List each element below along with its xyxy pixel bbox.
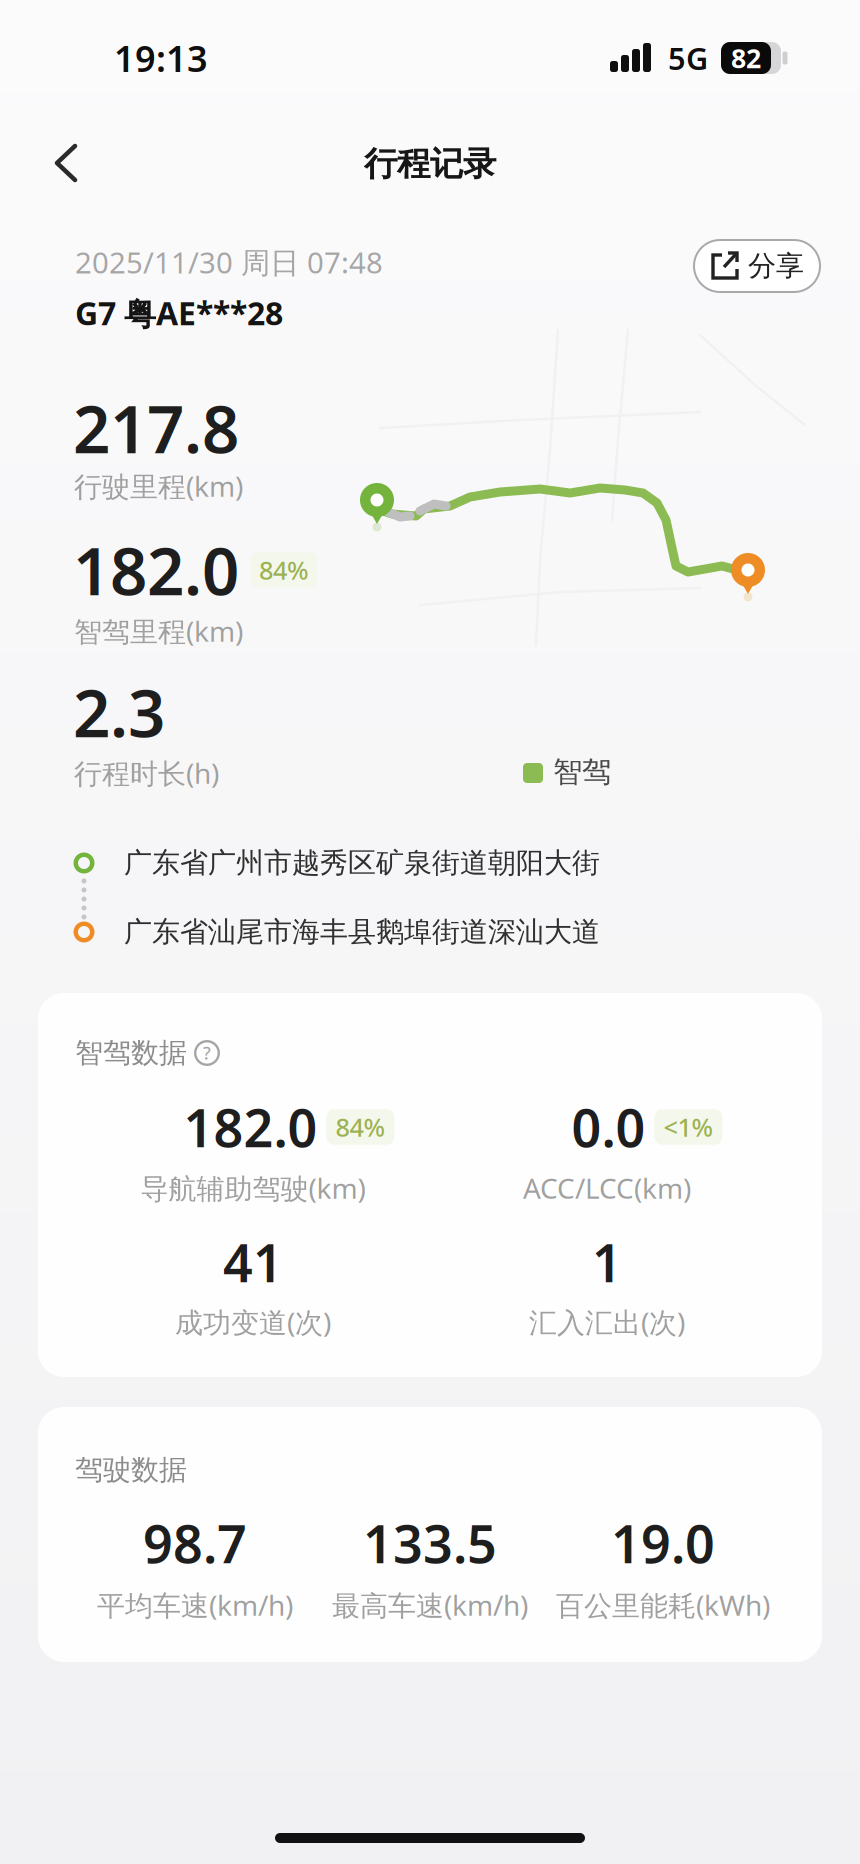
staticText: 最高车速(km/h) — [332, 1586, 528, 1624]
staticText: 导航辅助驾驶(km) — [140, 1169, 365, 1207]
staticText: 智驾数据 — [75, 1036, 187, 1070]
staticText: 182.0 — [183, 1092, 317, 1162]
staticText: 182.0 — [73, 527, 239, 613]
staticText: 5G — [668, 38, 708, 78]
staticText: ACC/LCC(km) — [523, 1169, 691, 1207]
staticText: 分享 — [748, 249, 804, 283]
staticText: 19.0 — [611, 1508, 715, 1578]
staticText: <1% — [663, 1110, 713, 1144]
staticText: 行程时长(h) — [74, 754, 219, 792]
staticText: 成功变道(次) — [175, 1303, 331, 1341]
staticText: 智驾 — [553, 754, 611, 790]
staticText: 0.0 — [571, 1092, 645, 1162]
staticText: 1 — [592, 1227, 622, 1297]
staticText: 84% — [335, 1110, 385, 1144]
button[interactable]: 返回 — [40, 130, 92, 196]
button[interactable]: 智驾数据说明 — [194, 1040, 220, 1066]
staticText: 82 — [731, 40, 761, 76]
staticText: 84% — [259, 553, 309, 587]
staticText: 133.5 — [363, 1508, 497, 1578]
staticText: 广东省广州市越秀区矿泉街道朝阳大街 — [124, 846, 600, 880]
staticText: 驾驶数据 — [75, 1453, 187, 1487]
staticText: ? — [203, 1041, 211, 1064]
staticText: 平均车速(km/h) — [97, 1586, 293, 1624]
staticText: 217.8 — [73, 385, 239, 471]
staticText: 智驾里程(km) — [74, 612, 243, 650]
staticText: 2.3 — [73, 669, 165, 755]
staticText: 19:13 — [114, 34, 208, 82]
staticText: 行程记录 — [364, 143, 496, 184]
staticText: 98.7 — [143, 1508, 247, 1578]
button[interactable]: 分享 — [694, 240, 820, 292]
staticText: G7 粤AE***28 — [75, 292, 283, 334]
staticText: 百公里能耗(kWh) — [556, 1586, 770, 1624]
staticText: 广东省汕尾市海丰县鹅埠街道深汕大道 — [124, 915, 600, 949]
staticText: 行驶里程(km) — [74, 467, 243, 505]
staticText: 汇入汇出(次) — [529, 1303, 685, 1341]
staticText: 41 — [223, 1227, 283, 1297]
staticText: 2025/11/30 周日 07:48 — [75, 242, 383, 281]
